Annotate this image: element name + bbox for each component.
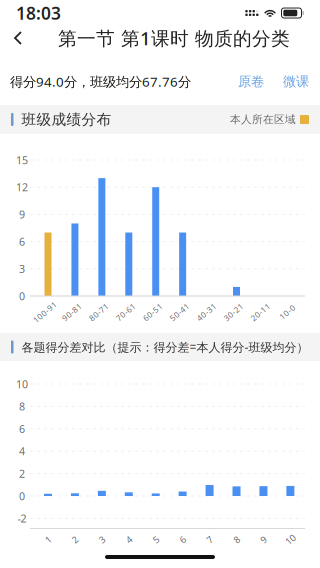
- staticText: 60-51: [141, 307, 164, 317]
- staticText: 50-41: [168, 307, 191, 317]
- staticText: 8: [234, 533, 239, 546]
- staticText: 4: [126, 533, 131, 546]
- staticText: 15: [16, 153, 28, 167]
- staticText: 20-11: [249, 307, 272, 317]
- staticText: 10: [285, 533, 295, 546]
- staticText: 3: [19, 262, 25, 276]
- staticText: 4: [19, 444, 25, 458]
- staticText: 班级成绩分布: [21, 110, 111, 128]
- staticText: 0: [19, 489, 25, 503]
- staticText: 1: [45, 533, 50, 546]
- staticText: 6: [19, 234, 25, 249]
- staticText: 40-31: [195, 307, 218, 317]
- button[interactable]: Back: [0, 23, 37, 53]
- staticText: 70-61: [114, 307, 137, 317]
- staticText: 微课: [283, 73, 309, 90]
- staticText: 80-71: [87, 307, 110, 317]
- staticText: 18:03: [16, 1, 61, 24]
- staticText: 10-0: [278, 307, 296, 317]
- staticText: 5: [153, 533, 158, 546]
- staticText: 本人所在区域: [230, 113, 296, 126]
- staticText: 12: [16, 180, 28, 194]
- staticText: 9: [19, 207, 25, 221]
- button[interactable]: 微课: [280, 70, 312, 93]
- staticText: 7: [207, 533, 212, 546]
- staticText: 3: [99, 533, 104, 546]
- staticText: 2: [19, 466, 25, 481]
- staticText: 9: [261, 533, 266, 546]
- staticText: 10: [16, 377, 28, 391]
- button[interactable]: 原卷: [235, 70, 267, 93]
- staticText: 各题得分差对比（提示：得分差=本人得分-班级均分）: [21, 339, 308, 355]
- staticText: 0: [19, 289, 25, 303]
- staticText: 6: [19, 422, 25, 436]
- staticText: 得分94.0分，班级均分67.76分: [10, 73, 191, 90]
- staticText: -2: [17, 511, 26, 525]
- staticText: 100-91: [31, 307, 59, 317]
- staticText: 90-81: [60, 307, 83, 317]
- staticText: 6: [180, 533, 185, 546]
- staticText: 第一节 第1课时 物质的分类: [58, 26, 290, 50]
- staticText: 8: [19, 399, 25, 413]
- staticText: 2: [72, 533, 77, 546]
- staticText: 原卷: [238, 73, 264, 90]
- staticText: 30-21: [222, 307, 245, 317]
